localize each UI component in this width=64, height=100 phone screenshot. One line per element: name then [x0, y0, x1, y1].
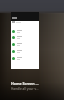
button[interactable]	[11, 12, 39, 69]
button[interactable]	[11, 48, 39, 55]
button[interactable]	[11, 55, 39, 62]
button[interactable]	[11, 28, 39, 35]
button[interactable]	[11, 41, 39, 48]
staticText: Handle all your vehicle needs in one pla…	[11, 87, 39, 91]
button[interactable]	[11, 34, 39, 41]
staticText: Home Screen App Launcher	[11, 81, 39, 86]
